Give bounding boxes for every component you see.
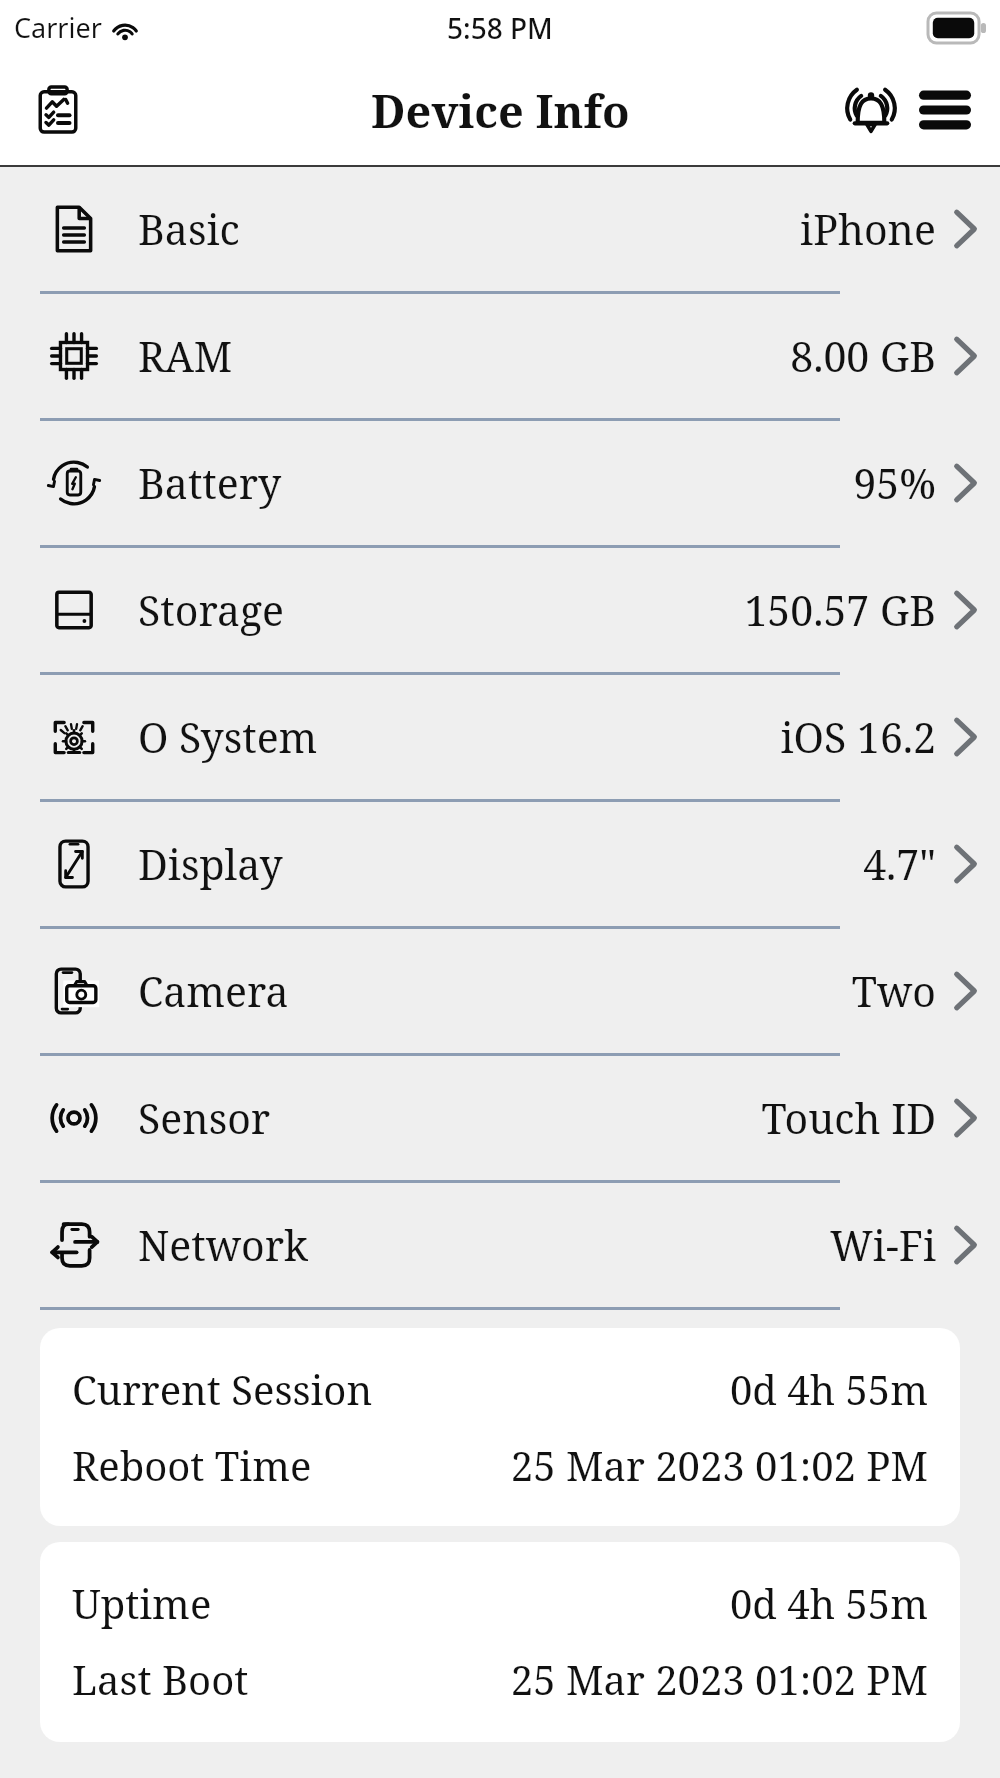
staticText: Current Session [72, 1362, 373, 1416]
staticText: iPhone [800, 201, 936, 257]
button[interactable]: O System [0, 675, 1000, 799]
staticText: 95% [853, 455, 936, 511]
staticText: Device Info [371, 80, 630, 141]
staticText: 150.57 GB [744, 582, 936, 638]
staticText: 25 Mar 2023 01:02 PM [510, 1438, 928, 1492]
button[interactable]: RAM [0, 294, 1000, 418]
staticText: Sensor [138, 1090, 271, 1146]
staticText: Carrier [14, 9, 102, 46]
button[interactable]: Notifications [834, 73, 908, 147]
staticText: Two [851, 963, 936, 1019]
button[interactable]: Sensor [0, 1056, 1000, 1180]
button[interactable]: Reports [26, 78, 90, 142]
button[interactable]: Basic [0, 167, 1000, 291]
button[interactable]: Display [0, 802, 1000, 926]
staticText: iOS 16.2 [780, 709, 936, 765]
staticText: Last Boot [72, 1652, 249, 1706]
staticText: Basic [138, 201, 240, 257]
button[interactable]: Storage [0, 548, 1000, 672]
staticText: O System [138, 709, 318, 765]
staticText: 25 Mar 2023 01:02 PM [510, 1652, 928, 1706]
staticText: 0d 4h 55m [730, 1576, 928, 1630]
button[interactable]: Network [0, 1183, 1000, 1307]
staticText: Camera [138, 963, 289, 1019]
button[interactable]: Current Session [40, 1328, 960, 1526]
staticText: Battery [138, 455, 282, 511]
staticText: Reboot Time [72, 1438, 312, 1492]
button[interactable]: Camera [0, 929, 1000, 1053]
staticText: Uptime [72, 1576, 212, 1630]
button[interactable]: Uptime [40, 1542, 960, 1742]
staticText: Touch ID [761, 1090, 936, 1146]
staticText: 4.7" [863, 836, 936, 892]
staticText: Wi-Fi [829, 1217, 936, 1273]
button[interactable]: Battery [0, 421, 1000, 545]
button[interactable]: Menu [908, 73, 982, 147]
staticText: 5:58 PM [447, 9, 553, 47]
staticText: Display [138, 836, 283, 892]
staticText: Network [138, 1217, 308, 1273]
staticText: Storage [138, 582, 284, 638]
staticText: 8.00 GB [790, 328, 936, 384]
staticText: 0d 4h 55m [730, 1362, 928, 1416]
staticText: RAM [138, 328, 233, 384]
